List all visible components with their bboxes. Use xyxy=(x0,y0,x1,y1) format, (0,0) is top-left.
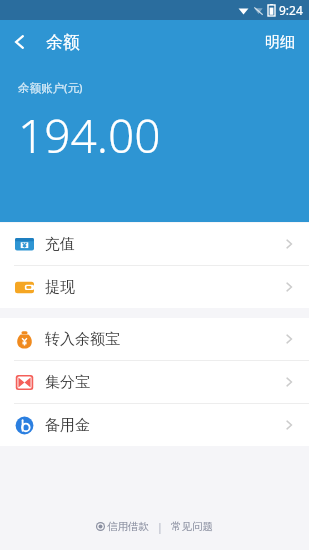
button[interactable]: Back xyxy=(0,26,36,58)
button[interactable]: 常见问题 xyxy=(169,517,215,536)
button[interactable]: 提现 xyxy=(0,266,309,308)
button[interactable]: 备用金 xyxy=(0,404,309,446)
staticText: 集分宝 xyxy=(45,373,90,392)
staticText: 常见问题 xyxy=(171,520,213,533)
button[interactable]: 集分宝 xyxy=(0,361,309,403)
staticText: 转入余额宝 xyxy=(45,330,120,349)
button[interactable]: 信用借款 xyxy=(94,517,151,536)
staticText: 9:24 xyxy=(279,2,303,18)
staticText: 信用借款 xyxy=(107,520,149,533)
staticText: | xyxy=(157,520,163,534)
staticText: 194.00 xyxy=(18,104,161,167)
button[interactable]: 明细 xyxy=(251,23,309,62)
staticText: 余额 xyxy=(46,32,80,53)
staticText: 提现 xyxy=(45,278,75,297)
button[interactable]: 充值 xyxy=(0,223,309,265)
staticText: 备用金 xyxy=(45,416,90,435)
staticText: 明细 xyxy=(265,33,295,52)
button[interactable]: 转入余额宝 xyxy=(0,318,309,360)
staticText: 余额账户(元) xyxy=(18,80,83,96)
staticText: 充值 xyxy=(45,235,75,254)
